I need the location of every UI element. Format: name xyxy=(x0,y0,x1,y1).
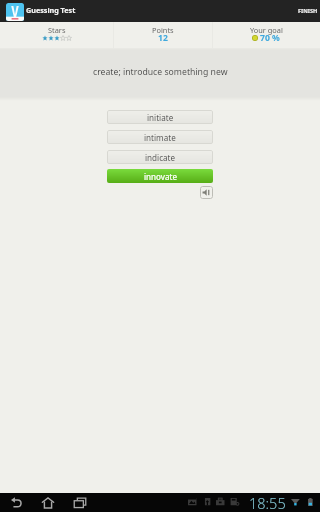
staticText: initiate xyxy=(147,112,174,123)
staticText: Your goal xyxy=(250,25,283,35)
button[interactable]: Your goal xyxy=(212,22,320,48)
button[interactable]: Stars xyxy=(0,22,113,48)
staticText: innovate xyxy=(144,171,177,182)
staticText: Guessing Test xyxy=(26,5,76,15)
button[interactable]: intimate xyxy=(107,130,213,144)
button[interactable]: Recent apps xyxy=(69,493,91,512)
staticText: indicate xyxy=(145,152,176,163)
button[interactable]: innovate xyxy=(107,169,213,183)
button[interactable]: Play pronunciation xyxy=(200,186,213,199)
staticText: intimate xyxy=(144,132,176,143)
staticText: Stars xyxy=(48,25,66,35)
button[interactable]: Points xyxy=(113,22,212,48)
button[interactable]: Home xyxy=(37,493,59,512)
button[interactable]: indicate xyxy=(107,150,213,164)
staticText: 70 % xyxy=(260,32,280,44)
staticText: 18:55 xyxy=(249,493,286,512)
button[interactable]: FINISH xyxy=(291,3,320,19)
button[interactable]: initiate xyxy=(107,110,213,124)
staticText: 12 xyxy=(158,32,168,44)
staticText: create; introduce something new xyxy=(93,66,228,78)
staticText: Points xyxy=(152,25,174,35)
staticText: FINISH xyxy=(298,7,318,15)
button[interactable]: Back xyxy=(5,493,27,512)
